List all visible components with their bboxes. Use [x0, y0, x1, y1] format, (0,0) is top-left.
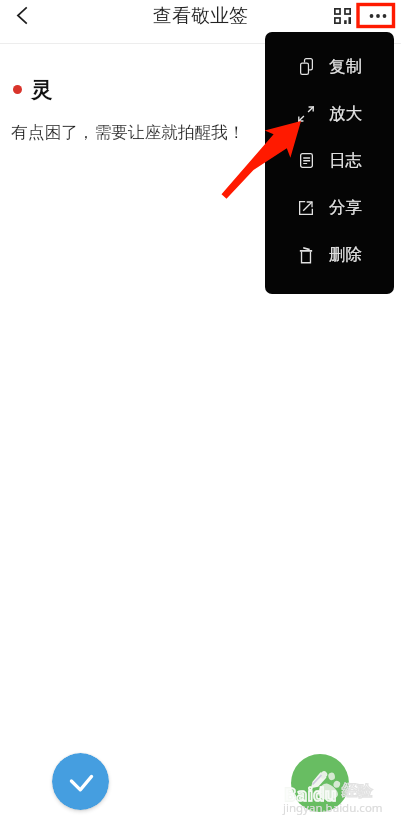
- staticText: 复制: [329, 56, 362, 77]
- button[interactable]: More options: [358, 3, 397, 29]
- button[interactable]: Back: [7, 0, 37, 30]
- staticText: 删除: [329, 244, 362, 265]
- button[interactable]: 删除: [265, 231, 394, 278]
- button[interactable]: 放大: [265, 90, 394, 137]
- button[interactable]: Edit: [291, 754, 349, 812]
- button[interactable]: 日志: [265, 137, 394, 184]
- button[interactable]: Done: [52, 753, 109, 810]
- staticText: Baidu: [284, 781, 337, 806]
- staticText: 经验: [342, 782, 372, 801]
- staticText: 灵: [31, 77, 52, 103]
- staticText: 有点困了，需要让座就拍醒我！: [11, 122, 245, 143]
- staticText: 查看敬业签: [153, 4, 248, 28]
- staticText: 分享: [329, 197, 362, 218]
- button[interactable]: 分享: [265, 184, 394, 231]
- button[interactable]: 复制: [265, 43, 394, 90]
- staticText: Baidu: [284, 781, 337, 806]
- staticText: 放大: [329, 103, 362, 124]
- button[interactable]: QR code: [330, 4, 354, 28]
- staticText: 日志: [329, 150, 362, 171]
- staticText: jingyan.baidu.com: [283, 800, 383, 816]
